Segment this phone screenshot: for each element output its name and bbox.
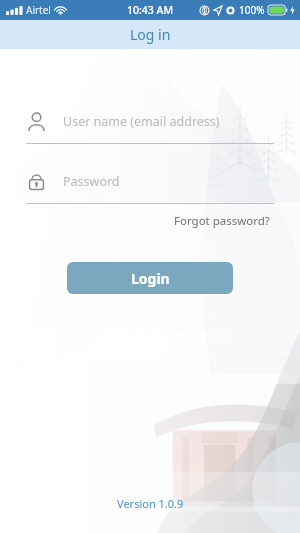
button[interactable]: Login <box>67 262 233 294</box>
button[interactable]: User name <box>26 106 274 144</box>
button[interactable]: Password <box>26 166 274 204</box>
staticText: User name (email address) <box>63 113 220 130</box>
staticText: Airtel <box>26 3 51 17</box>
staticText: Log in <box>130 25 171 44</box>
staticText: Forgot password? <box>174 213 270 229</box>
staticText: 100% <box>239 3 265 17</box>
staticText: Password <box>63 173 120 190</box>
staticText: Login <box>131 269 170 288</box>
staticText: Version 1.0.9 <box>117 496 184 511</box>
other: User name <box>26 111 47 132</box>
staticText: 10:43 AM <box>127 3 174 17</box>
button[interactable]: Forgot password? <box>170 210 274 232</box>
other: Password <box>26 171 47 192</box>
